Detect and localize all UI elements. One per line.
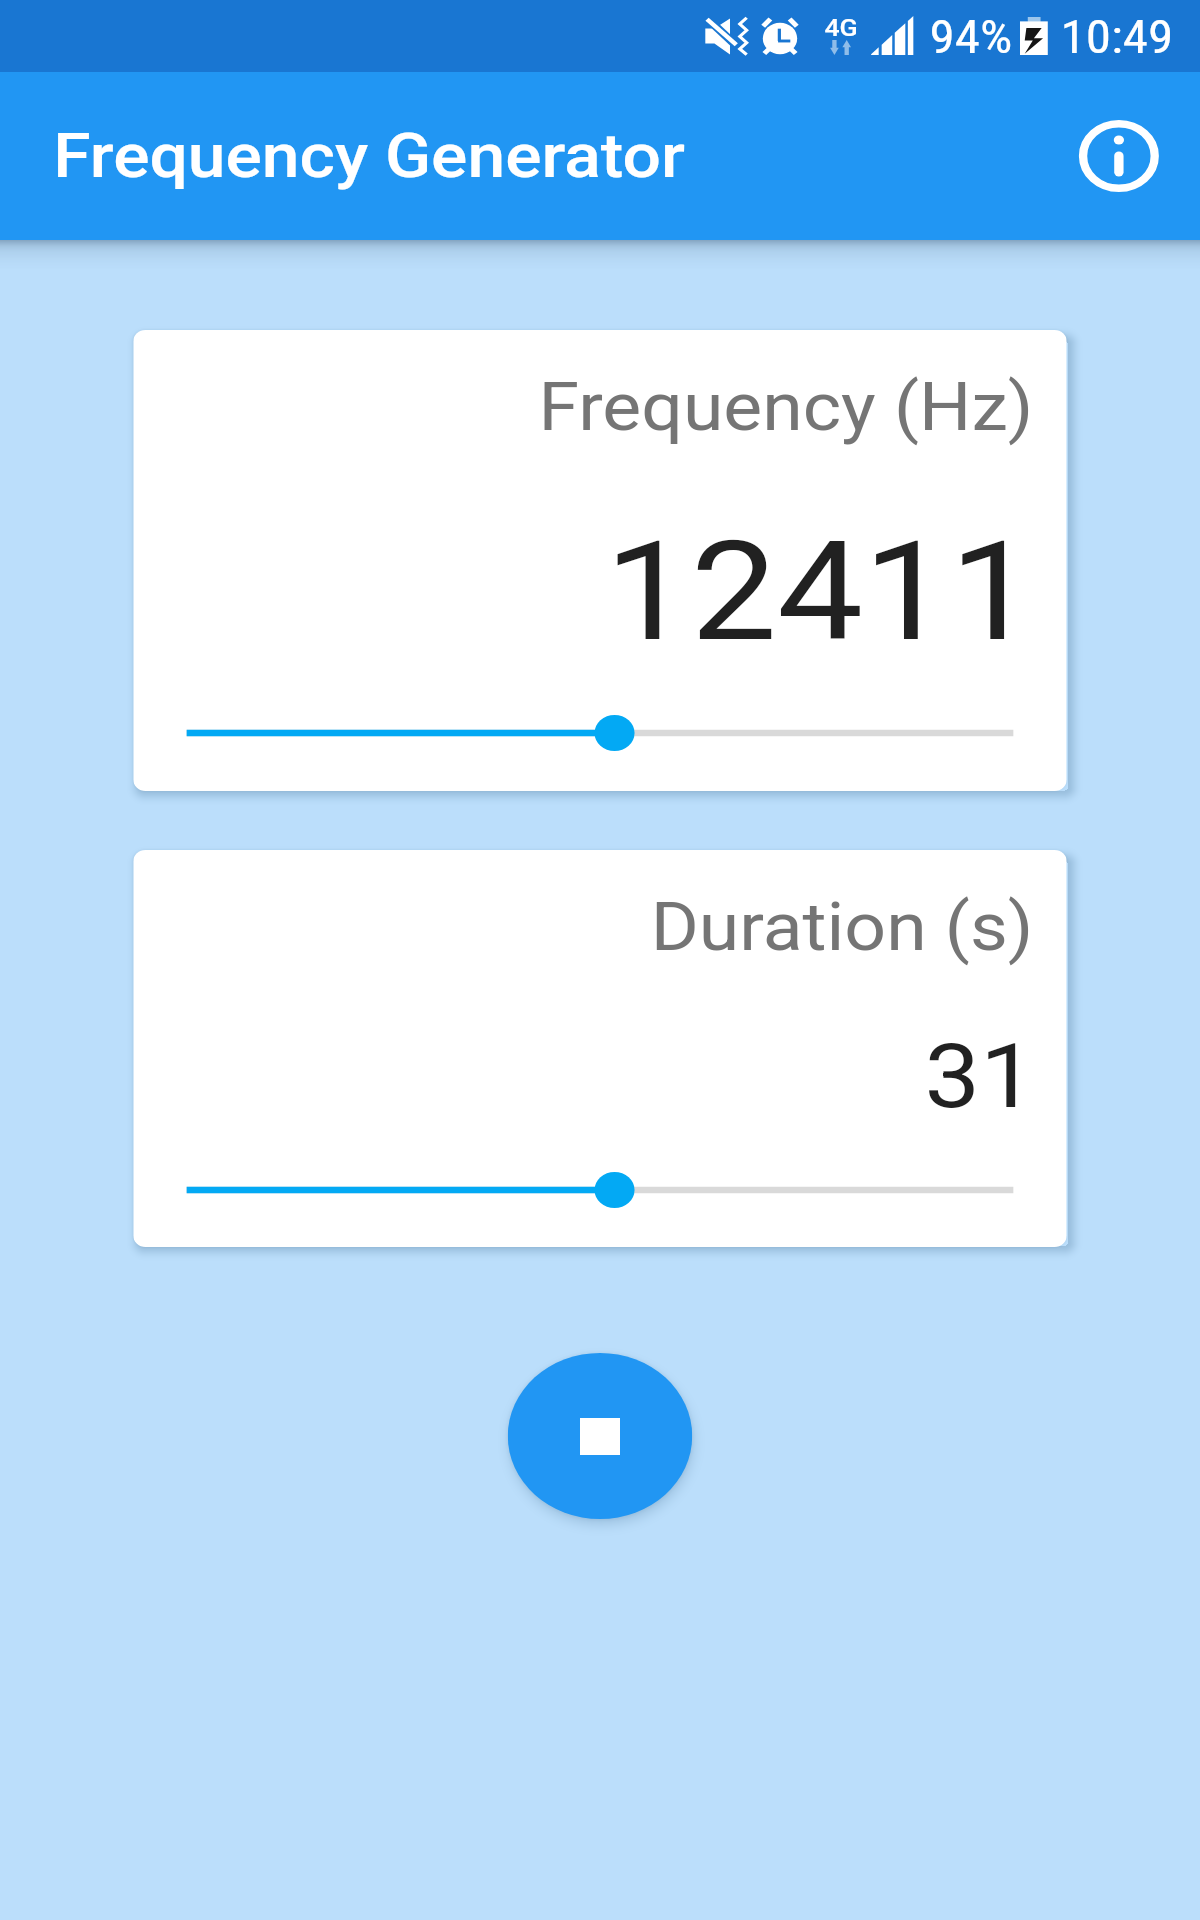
button[interactable]: Stop <box>508 1353 692 1519</box>
staticText: Duration (s) <box>133 889 1033 966</box>
staticText: 12411 <box>133 511 1035 673</box>
staticText: 94% <box>854 10 1012 64</box>
button[interactable]: Info <box>1066 108 1172 204</box>
staticText: 31 <box>133 1024 1035 1128</box>
staticText: Frequency Generator <box>53 120 685 191</box>
staticText: 4G <box>824 14 858 42</box>
button[interactable] <box>133 330 1067 791</box>
staticText: 10:49 <box>1007 10 1173 64</box>
staticText: Frequency (Hz) <box>133 369 1033 446</box>
button[interactable]: Duration (s) slider <box>187 1166 1013 1214</box>
button[interactable]: Frequency (Hz) slider <box>187 709 1013 757</box>
button[interactable] <box>133 850 1067 1247</box>
